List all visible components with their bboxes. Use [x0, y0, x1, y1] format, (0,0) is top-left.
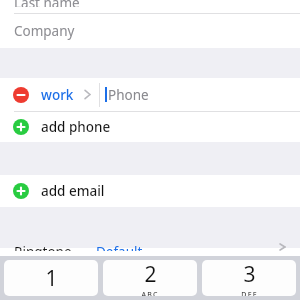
staticText: Phone [108, 86, 149, 104]
other: Remove phone [13, 87, 29, 103]
staticText: Ringtone [14, 243, 72, 251]
staticText: Last name [14, 0, 80, 7]
button[interactable]: Company [0, 14, 300, 48]
button[interactable]: add phone [0, 112, 300, 142]
button[interactable]: Ringtone [0, 248, 300, 256]
button[interactable]: add email [0, 175, 300, 207]
staticText: Company [14, 22, 75, 40]
staticText: add phone [41, 118, 111, 136]
staticText: work [41, 86, 74, 104]
staticText: Default [96, 243, 143, 251]
button[interactable]: Last name [0, 0, 300, 13]
button[interactable]: 3 [202, 260, 296, 296]
staticText: ABC [141, 290, 159, 296]
staticText: 3 [243, 260, 256, 289]
button[interactable]: Remove phone [0, 78, 300, 111]
staticText: 2 [144, 260, 157, 289]
staticText: add email [41, 182, 105, 200]
staticText: 1 [45, 264, 58, 293]
button[interactable]: 2 [103, 260, 197, 296]
staticText: DEF [241, 290, 258, 296]
button[interactable]: 1 [4, 260, 98, 296]
